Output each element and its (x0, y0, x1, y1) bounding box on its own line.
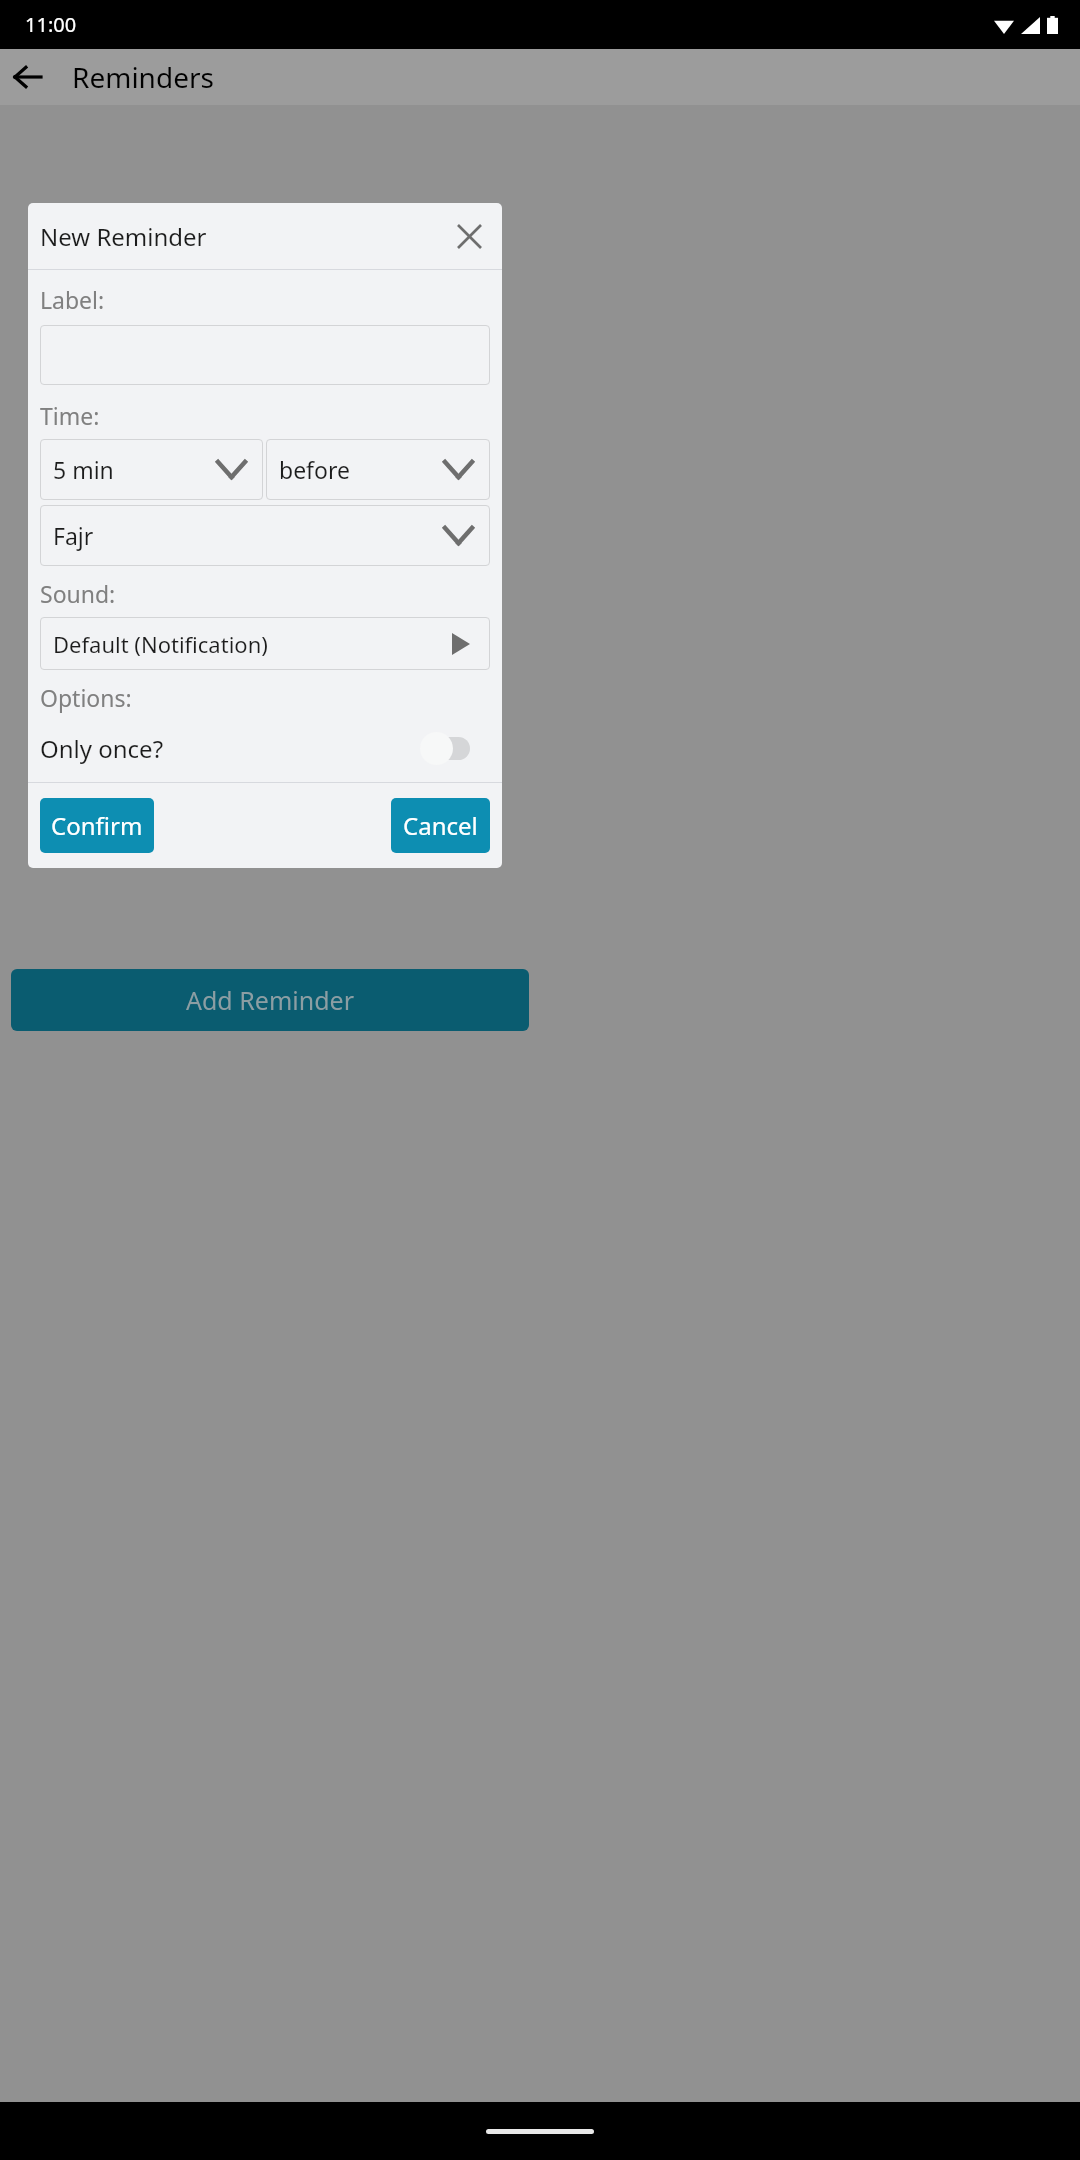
button[interactable]: before (266, 439, 490, 500)
staticText: New Reminder (40, 220, 207, 253)
staticText: Sound: (40, 578, 116, 609)
staticText: Add Reminder (186, 983, 354, 1017)
button[interactable]: Back (0, 49, 56, 105)
button[interactable]: Only once? (40, 719, 490, 777)
staticText: Default (Notification) (53, 629, 268, 659)
button[interactable]: Close (448, 215, 490, 257)
button[interactable]: Default (Notification) (40, 617, 490, 670)
staticText: Reminders (72, 58, 214, 96)
staticText: 5 min (53, 454, 114, 485)
button[interactable]: Add Reminder (11, 969, 529, 1031)
staticText: Options: (40, 682, 132, 713)
staticText: Fajr (53, 520, 94, 551)
staticText: Only once? (40, 732, 164, 765)
staticText: Confirm (51, 809, 143, 842)
staticText: Time: (40, 400, 100, 431)
staticText: before (279, 454, 350, 485)
button[interactable]: Confirm (40, 798, 154, 853)
staticText: Cancel (403, 809, 478, 842)
button[interactable]: Fajr (40, 505, 490, 566)
staticText: 11:00 (25, 11, 77, 38)
button[interactable]: Cancel (391, 798, 490, 853)
button[interactable] (40, 325, 490, 385)
staticText: Label: (40, 284, 105, 315)
button[interactable]: 5 min (40, 439, 263, 500)
